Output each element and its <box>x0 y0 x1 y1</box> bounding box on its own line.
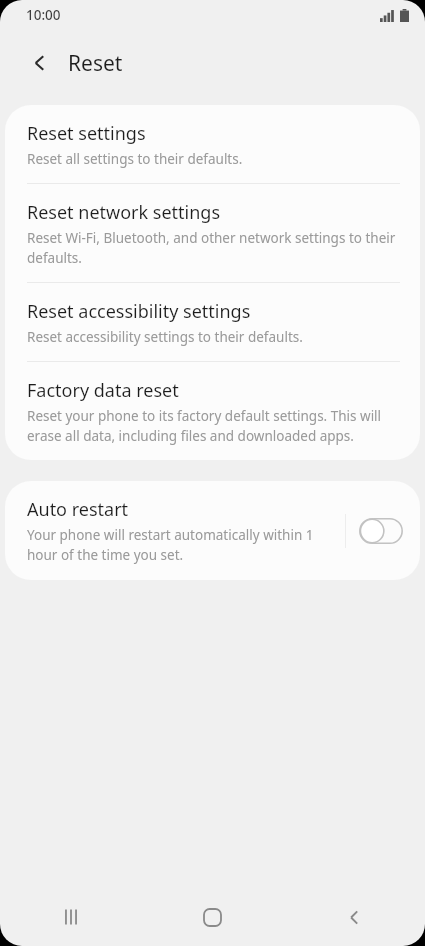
button[interactable]: Back <box>283 888 425 946</box>
button[interactable]: Reset settings <box>5 105 420 184</box>
button[interactable]: Auto restart toggle <box>358 516 404 546</box>
button[interactable]: Factory data reset <box>5 362 420 460</box>
button[interactable]: Reset network settings <box>5 184 420 283</box>
button[interactable]: Home <box>141 888 283 946</box>
staticText: Reset settings <box>27 121 146 146</box>
button[interactable]: Reset accessibility settings <box>5 283 420 362</box>
staticText: Your phone will restart automatically wi… <box>27 526 335 564</box>
staticText: Reset accessibility settings to their de… <box>27 328 303 346</box>
button[interactable]: Back <box>20 43 60 83</box>
staticText: Reset <box>68 49 123 78</box>
staticText: Reset Wi-Fi, Bluetooth, and other networ… <box>27 229 400 267</box>
staticText: Reset accessibility settings <box>27 299 251 324</box>
button[interactable]: Auto restart <box>5 481 420 580</box>
staticText: Auto restart <box>27 497 129 522</box>
button[interactable]: Recents <box>0 888 141 946</box>
staticText: 10:00 <box>26 6 61 24</box>
staticText: Reset network settings <box>27 200 221 225</box>
staticText: Factory data reset <box>27 378 179 403</box>
staticText: Reset your phone to its factory default … <box>27 407 400 445</box>
staticText: Reset all settings to their defaults. <box>27 150 243 168</box>
